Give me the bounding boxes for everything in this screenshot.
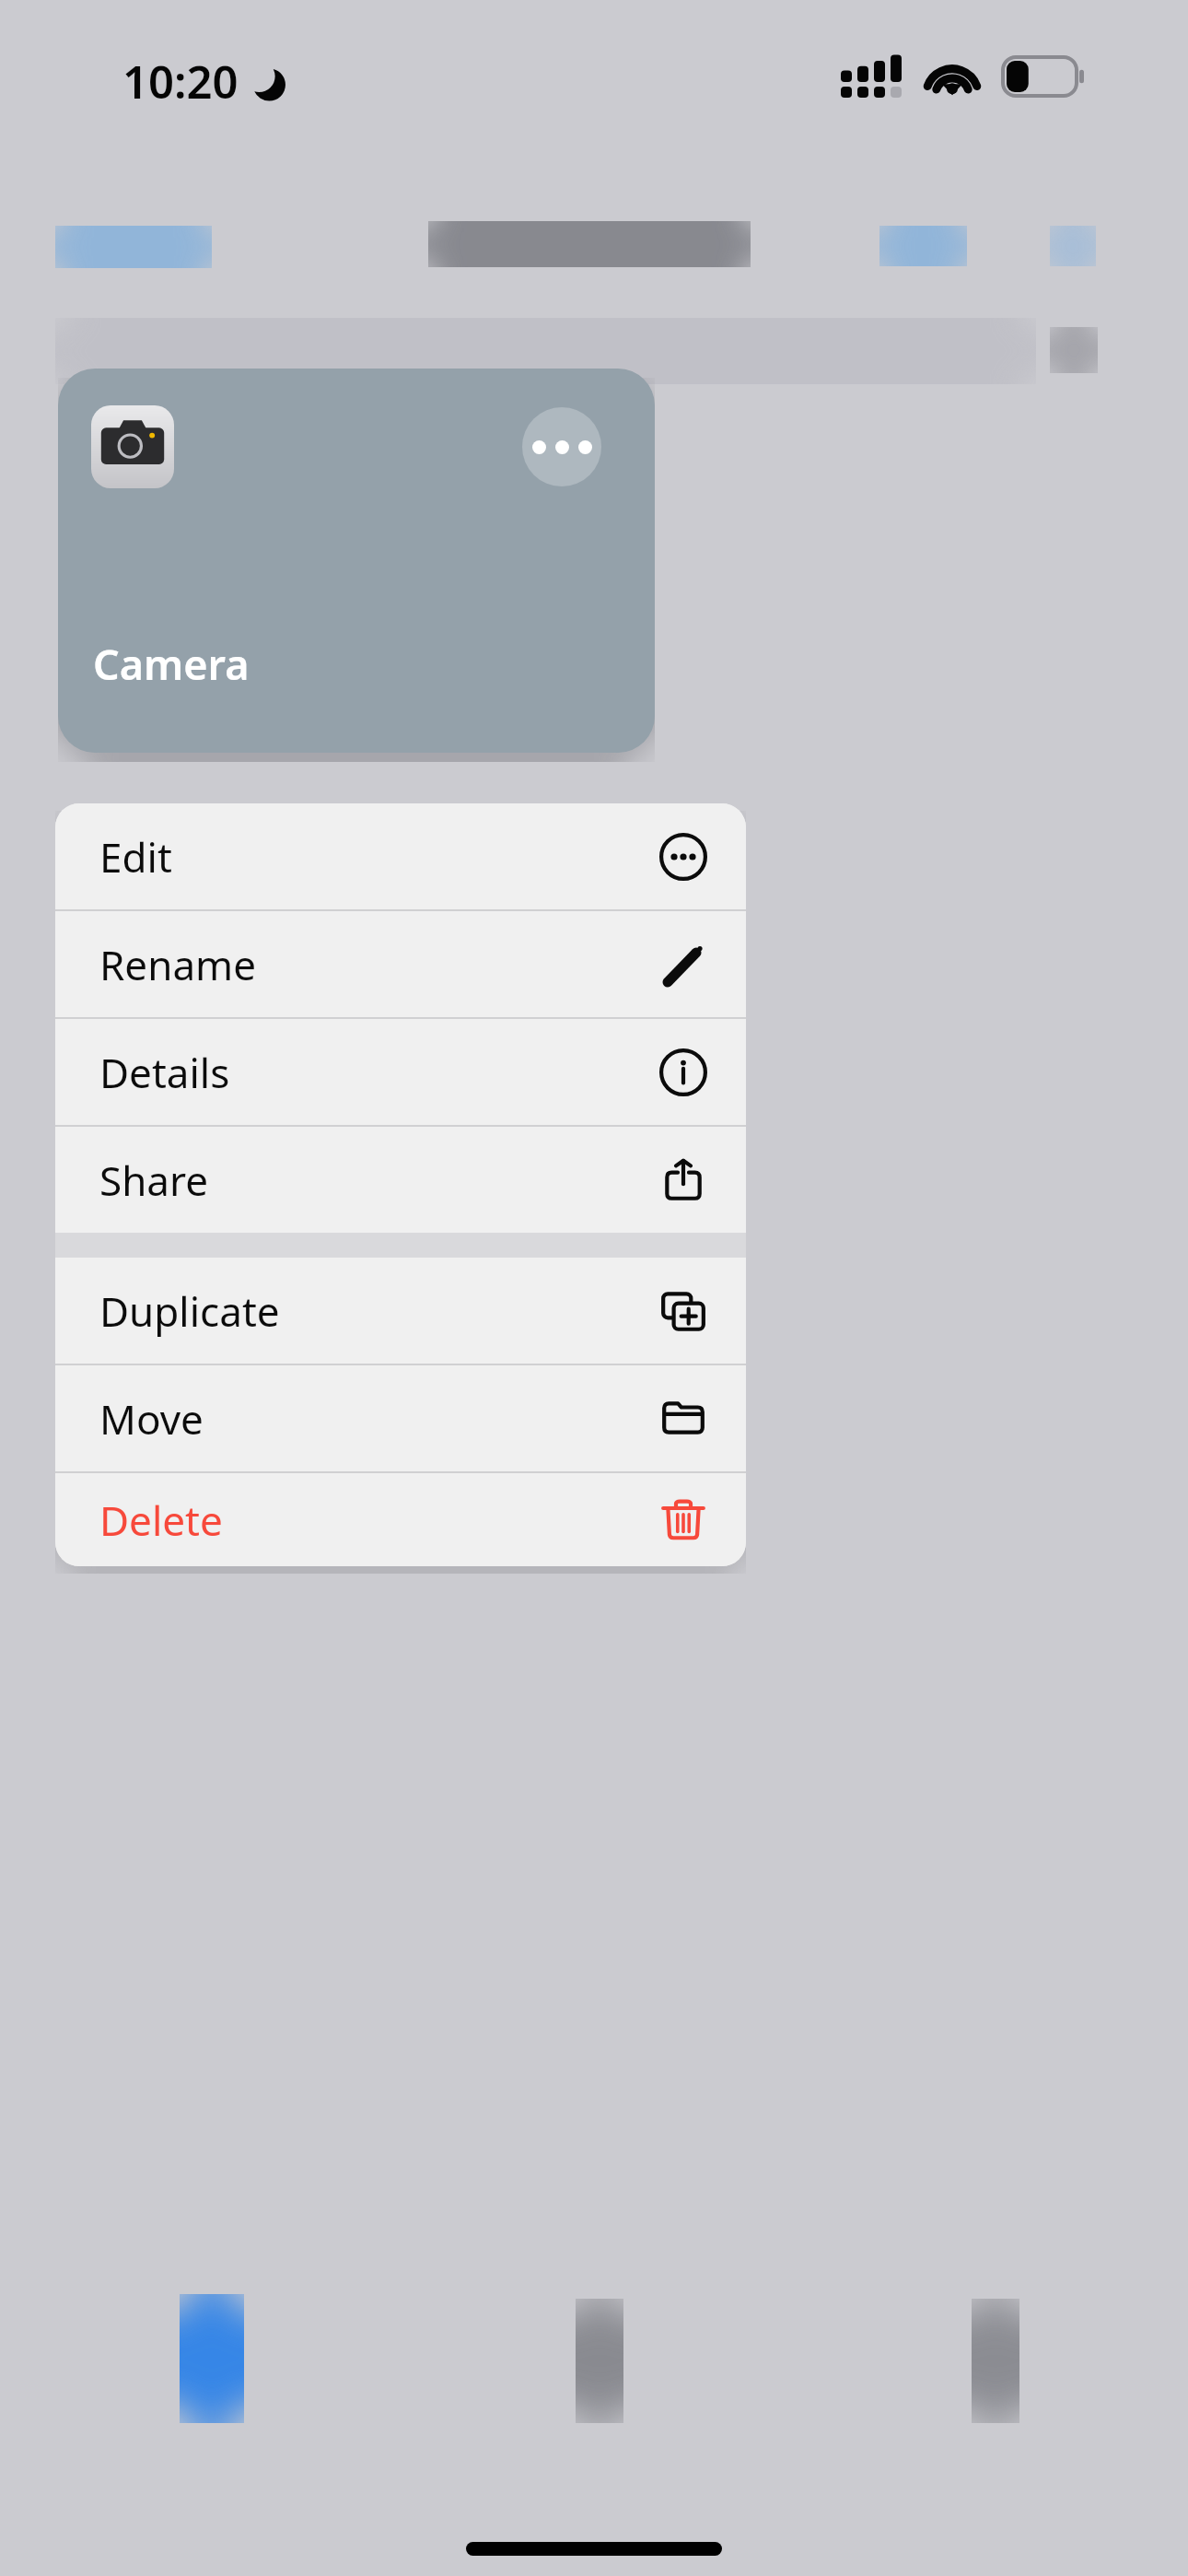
staticText: Share: [99, 1153, 209, 1208]
staticText: Edit: [99, 829, 172, 884]
button[interactable]: More options: [58, 369, 655, 753]
button[interactable]: Move: [55, 1365, 746, 1471]
staticText: Camera: [93, 636, 250, 692]
staticText: Details: [99, 1045, 230, 1100]
button[interactable]: Share: [55, 1127, 746, 1233]
staticText: 10:20: [122, 51, 239, 112]
button[interactable]: More options: [522, 407, 601, 486]
button[interactable]: Details: [55, 1019, 746, 1125]
staticText: Move: [99, 1391, 204, 1446]
staticText: Rename: [99, 937, 257, 992]
button[interactable]: Edit: [55, 803, 746, 909]
button[interactable]: Delete: [55, 1473, 746, 1566]
button[interactable]: Rename: [55, 911, 746, 1017]
button[interactable]: Duplicate: [55, 1258, 746, 1364]
staticText: Delete: [99, 1493, 223, 1548]
staticText: Duplicate: [99, 1283, 280, 1339]
